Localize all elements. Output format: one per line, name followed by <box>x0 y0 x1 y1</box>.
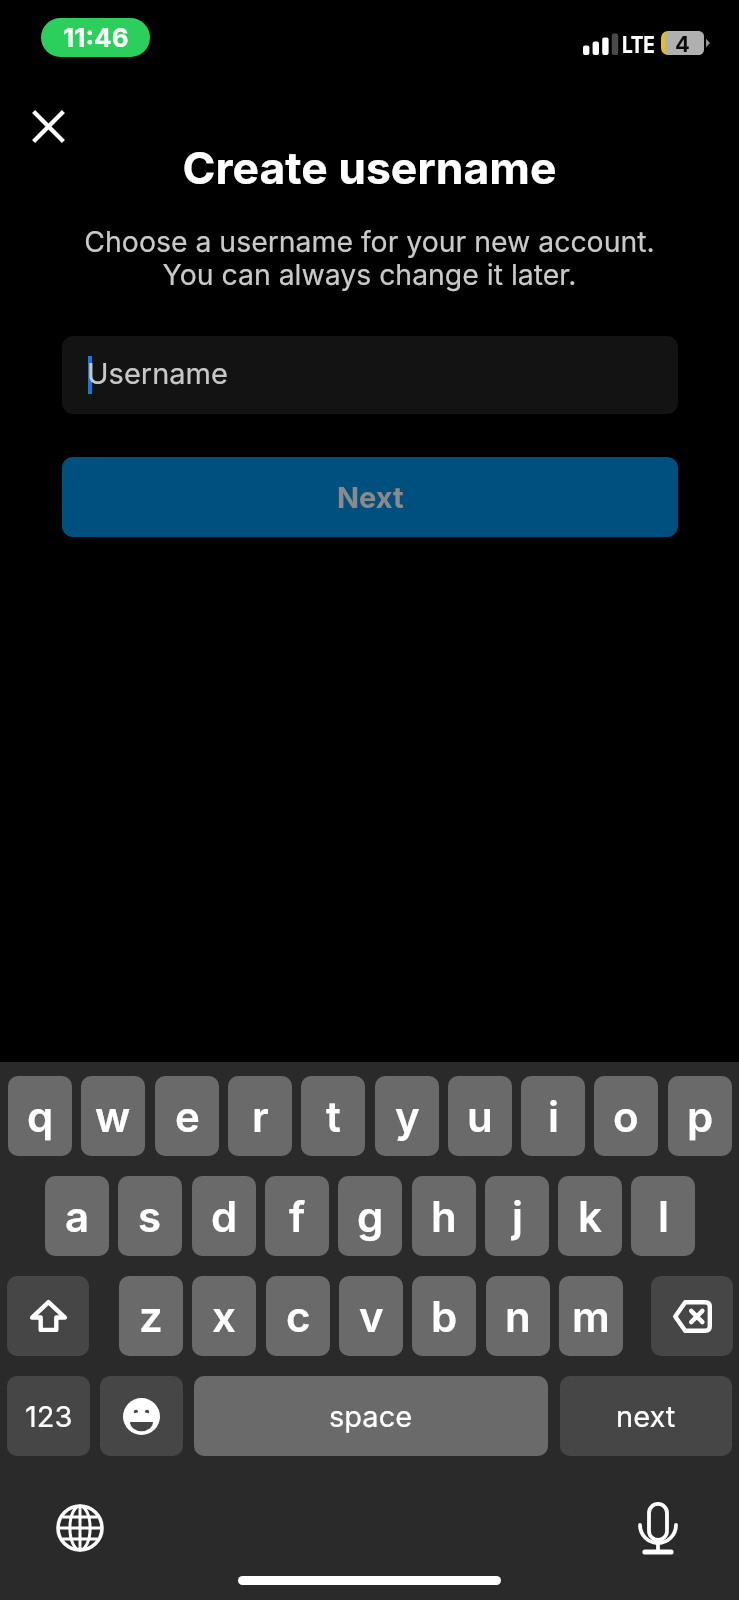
button[interactable]: space <box>194 1376 548 1456</box>
staticText: q <box>27 1091 54 1142</box>
staticText: t <box>326 1091 341 1142</box>
staticText: Create username <box>0 141 739 195</box>
button[interactable]: c <box>266 1276 330 1356</box>
staticText: 11:46 <box>63 22 129 53</box>
staticText: s <box>138 1191 162 1242</box>
button[interactable]: p <box>668 1076 732 1156</box>
staticText: m <box>572 1291 610 1342</box>
button[interactable]: Shift <box>7 1276 89 1356</box>
staticText: j <box>512 1191 523 1242</box>
staticText: Username <box>87 356 228 391</box>
staticText: 4 <box>661 31 704 58</box>
button[interactable]: Switch keyboard language <box>56 1504 104 1552</box>
button[interactable]: x <box>192 1276 256 1356</box>
staticText: space <box>329 1399 413 1434</box>
staticText: next <box>616 1399 676 1434</box>
staticText: a <box>65 1191 90 1242</box>
staticText: y <box>395 1091 420 1142</box>
staticText: o <box>613 1091 639 1142</box>
button[interactable]: u <box>448 1076 512 1156</box>
staticText: g <box>357 1191 384 1242</box>
staticText: z <box>139 1291 163 1342</box>
button[interactable]: i <box>521 1076 585 1156</box>
staticText: f <box>289 1191 306 1242</box>
button[interactable]: Emoji <box>100 1376 183 1456</box>
button[interactable]: Dictate <box>634 1502 682 1550</box>
button[interactable]: h <box>412 1176 476 1256</box>
button[interactable]: l <box>631 1176 695 1256</box>
staticText: d <box>211 1191 238 1242</box>
staticText: Choose a username for your new account. … <box>0 224 739 292</box>
staticText: Next <box>337 480 404 515</box>
staticText: e <box>175 1091 200 1142</box>
button[interactable]: Next <box>62 457 678 537</box>
button[interactable]: q <box>8 1076 72 1156</box>
button[interactable]: Close <box>20 98 76 154</box>
staticText: u <box>467 1091 493 1142</box>
staticText: LTE <box>622 31 655 59</box>
staticText: n <box>505 1291 531 1342</box>
staticText: w <box>95 1091 131 1142</box>
button[interactable]: f <box>265 1176 329 1256</box>
button[interactable]: d <box>192 1176 256 1256</box>
button[interactable]: j <box>485 1176 549 1256</box>
button[interactable]: b <box>412 1276 476 1356</box>
button[interactable]: m <box>559 1276 623 1356</box>
staticText: k <box>578 1191 602 1242</box>
staticText: b <box>431 1291 458 1342</box>
button[interactable]: r <box>228 1076 292 1156</box>
staticText: p <box>687 1091 714 1142</box>
staticText: x <box>212 1291 236 1342</box>
button[interactable]: k <box>558 1176 622 1256</box>
button[interactable]: o <box>594 1076 658 1156</box>
button[interactable]: next <box>560 1376 732 1456</box>
button[interactable]: w <box>81 1076 145 1156</box>
button[interactable]: n <box>486 1276 550 1356</box>
button[interactable]: e <box>155 1076 219 1156</box>
button[interactable]: s <box>118 1176 182 1256</box>
button[interactable]: v <box>339 1276 403 1356</box>
button[interactable]: z <box>119 1276 183 1356</box>
staticText: l <box>658 1191 669 1242</box>
button[interactable]: a <box>45 1176 109 1256</box>
staticText: h <box>431 1191 457 1242</box>
staticText: v <box>359 1291 384 1342</box>
button[interactable]: Username <box>62 336 678 414</box>
button[interactable]: 123 <box>7 1376 90 1456</box>
staticText: 123 <box>25 1399 73 1434</box>
button[interactable]: y <box>375 1076 439 1156</box>
button[interactable]: g <box>338 1176 402 1256</box>
staticText: c <box>286 1291 311 1342</box>
staticText: i <box>548 1091 559 1142</box>
button[interactable]: Backspace <box>651 1276 733 1356</box>
staticText: r <box>252 1091 269 1142</box>
button[interactable]: t <box>301 1076 365 1156</box>
